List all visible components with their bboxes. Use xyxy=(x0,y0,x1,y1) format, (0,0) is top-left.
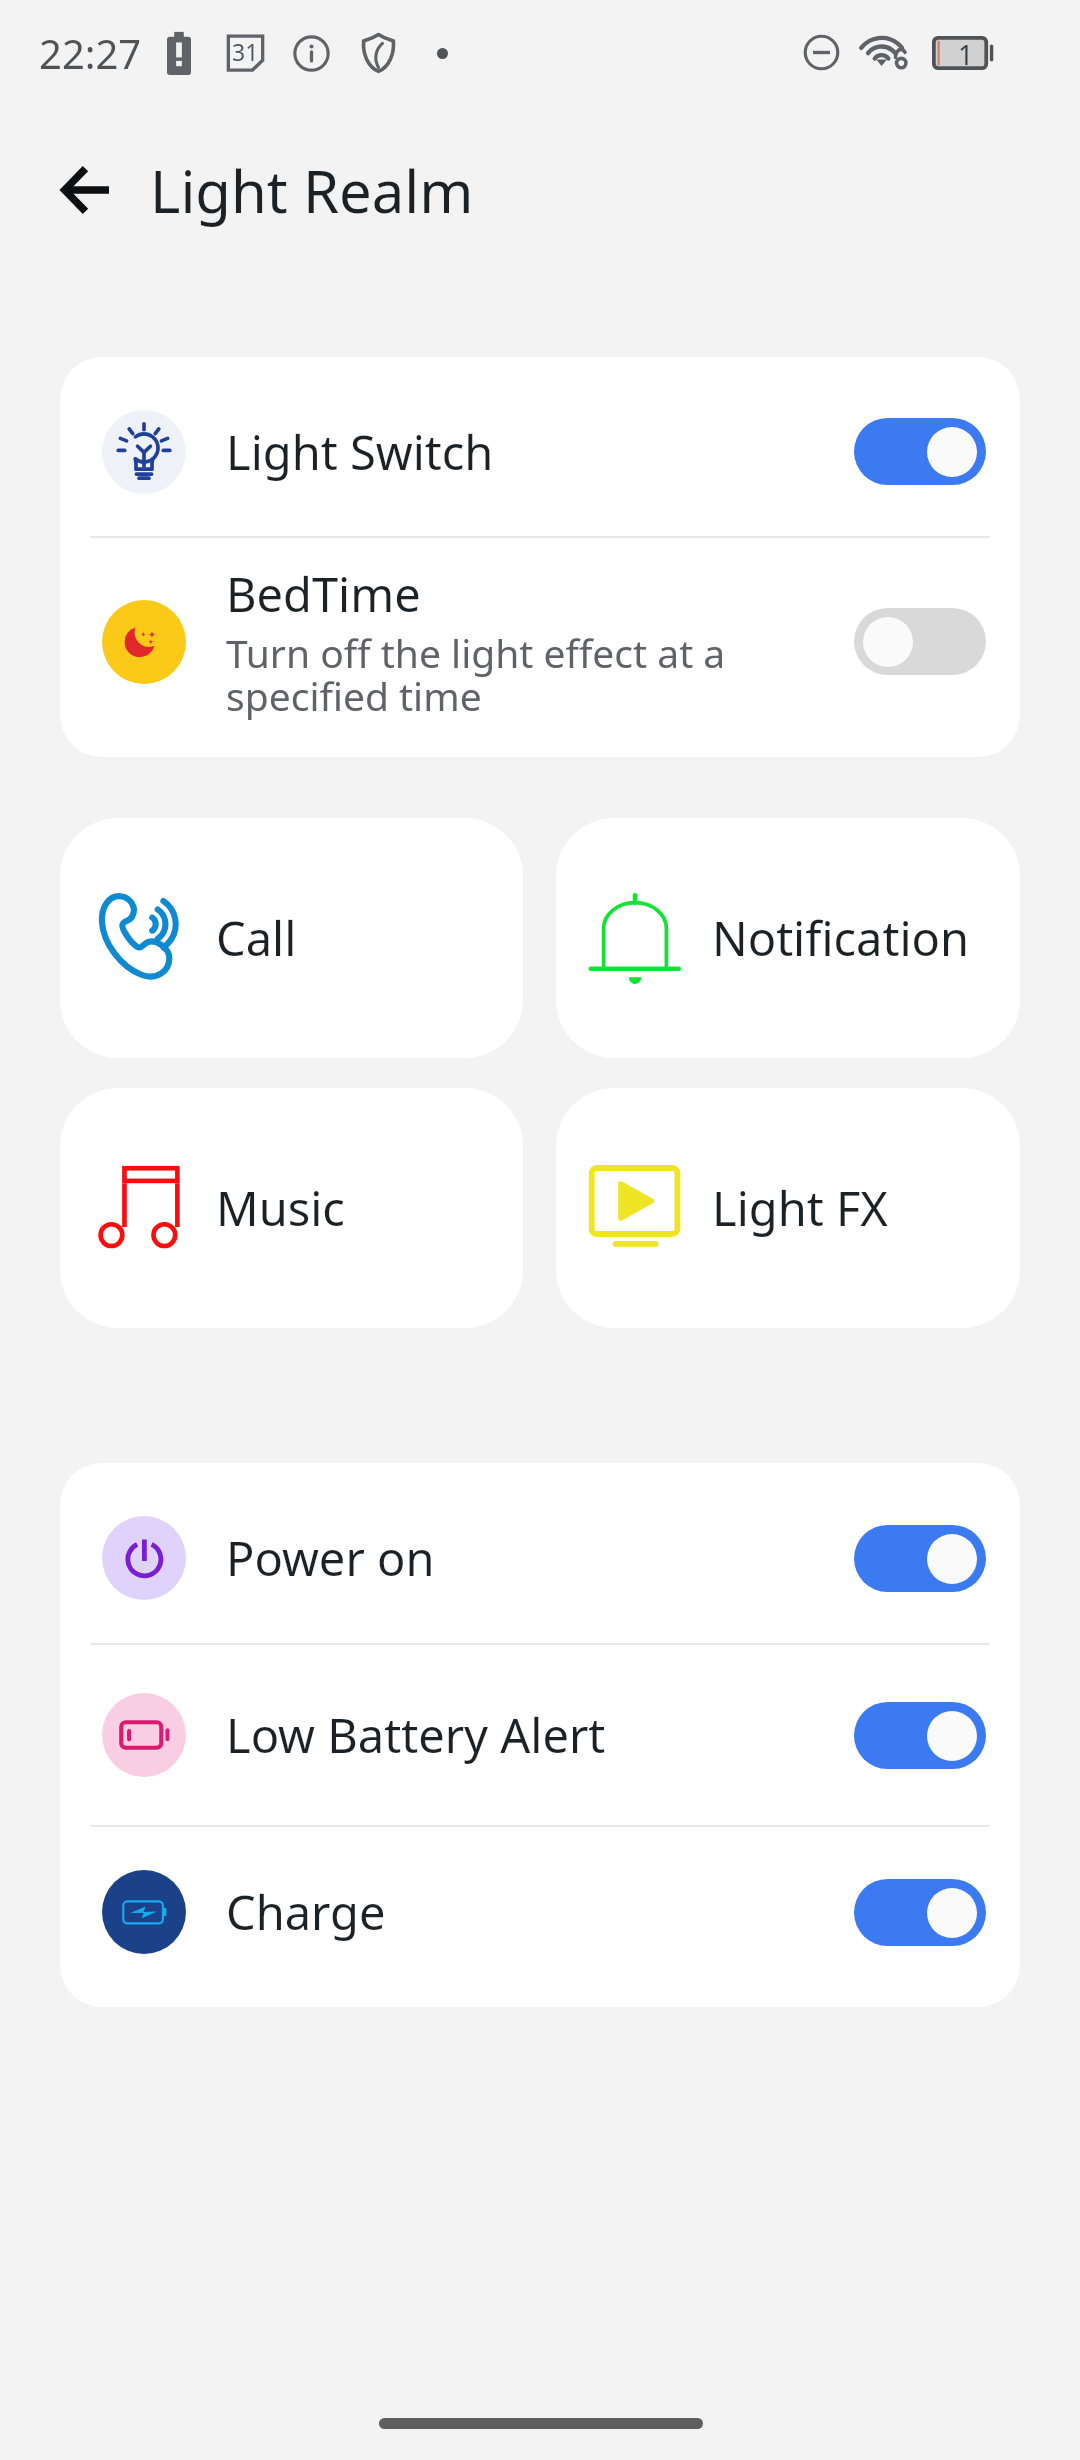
button[interactable]: BedTime xyxy=(60,538,1020,757)
staticText: 1 xyxy=(958,36,974,70)
staticText: Call xyxy=(216,906,297,970)
staticText: Turn off the light effect at a specified… xyxy=(226,626,840,722)
button[interactable]: Switch on xyxy=(854,1525,986,1592)
button[interactable]: Call xyxy=(60,818,523,1058)
staticText: 22:27 xyxy=(39,26,142,80)
staticText: 31 xyxy=(232,36,259,67)
button[interactable]: Switch off xyxy=(854,608,986,675)
button[interactable]: Back xyxy=(36,142,132,238)
button[interactable]: Switch on xyxy=(854,418,986,485)
staticText: Light Realm xyxy=(150,151,474,230)
staticText: Music xyxy=(216,1176,345,1240)
button[interactable]: Music xyxy=(60,1088,523,1328)
button[interactable]: Switch on xyxy=(854,1879,986,1946)
staticText: Notification xyxy=(712,906,970,970)
staticText: BedTime xyxy=(226,562,421,626)
button[interactable]: Notification xyxy=(556,818,1020,1058)
staticText: Low Battery Alert xyxy=(226,1703,606,1767)
button[interactable]: Low Battery Alert xyxy=(60,1645,1020,1825)
button[interactable]: Light FX xyxy=(556,1088,1020,1328)
staticText: Light FX xyxy=(712,1176,888,1240)
staticText: Charge xyxy=(226,1880,386,1944)
button[interactable]: Power on xyxy=(60,1463,1020,1643)
staticText: Light Switch xyxy=(226,420,494,484)
button[interactable]: Charge xyxy=(60,1827,1020,2007)
button[interactable]: Switch on xyxy=(854,1702,986,1769)
button[interactable]: Light Switch xyxy=(60,357,1020,536)
staticText: Power on xyxy=(226,1526,435,1590)
